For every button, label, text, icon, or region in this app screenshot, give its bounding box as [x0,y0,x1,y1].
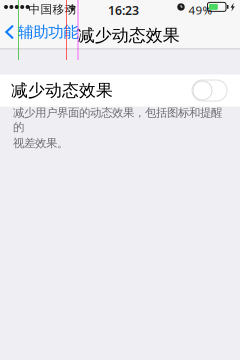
staticText: 49% [188,2,212,18]
button[interactable]: 减少动态效果 [0,74,240,106]
button[interactable]: 辅助功能 [5,24,83,39]
staticText: 视差效果。 [13,136,68,150]
staticText: 减少用户界面的动态效果，包括图标和提醒的 [13,105,222,134]
staticText: 减少动态效果 [78,25,180,46]
staticText: 中国移动 [28,2,76,17]
staticText: 辅助功能 [18,22,78,42]
staticText: 减少动态效果 [11,80,113,101]
staticText: 16:23 [108,2,139,18]
